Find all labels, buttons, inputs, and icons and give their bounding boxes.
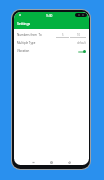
button[interactable]: Numbers from To bbox=[14, 31, 89, 39]
button[interactable]: Home bbox=[47, 158, 56, 165]
button[interactable]: Recents bbox=[29, 158, 38, 165]
button[interactable]: Vibration toggle bbox=[78, 50, 86, 53]
staticText: default bbox=[77, 41, 86, 45]
button[interactable]: 10 bbox=[70, 33, 86, 38]
button[interactable]: Vibration bbox=[14, 47, 89, 55]
staticText: Numbers from To bbox=[17, 33, 42, 37]
staticText: 5 bbox=[62, 33, 64, 37]
staticText: Multiple Type bbox=[17, 41, 36, 45]
staticText: 10 bbox=[77, 33, 80, 37]
staticText: Settings bbox=[17, 21, 31, 26]
staticText: 9:30 bbox=[46, 14, 53, 18]
button[interactable]: Back bbox=[65, 158, 74, 165]
button[interactable]: Multiple Type bbox=[14, 39, 89, 47]
staticText: Vibration bbox=[17, 49, 30, 53]
button[interactable]: 5 bbox=[56, 33, 69, 38]
